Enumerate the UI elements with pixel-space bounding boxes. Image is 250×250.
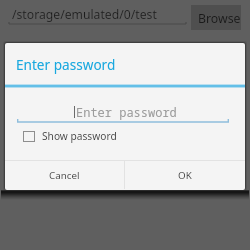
staticText: Enter password xyxy=(76,104,177,120)
button[interactable]: Browse xyxy=(191,5,241,30)
staticText: Cancel xyxy=(49,169,80,182)
staticText: OK xyxy=(178,169,192,182)
staticText: Show password xyxy=(42,129,117,143)
button[interactable]: /storage/emulated/0/test xyxy=(8,4,188,25)
button[interactable]: Enter password xyxy=(17,99,229,123)
button[interactable]: Show password xyxy=(23,129,117,143)
staticText: Browse xyxy=(198,10,241,27)
button[interactable]: OK xyxy=(125,161,245,189)
staticText: /storage/emulated/0/test xyxy=(12,6,157,23)
staticText: Enter password xyxy=(16,55,116,74)
button[interactable]: Cancel xyxy=(5,161,124,189)
